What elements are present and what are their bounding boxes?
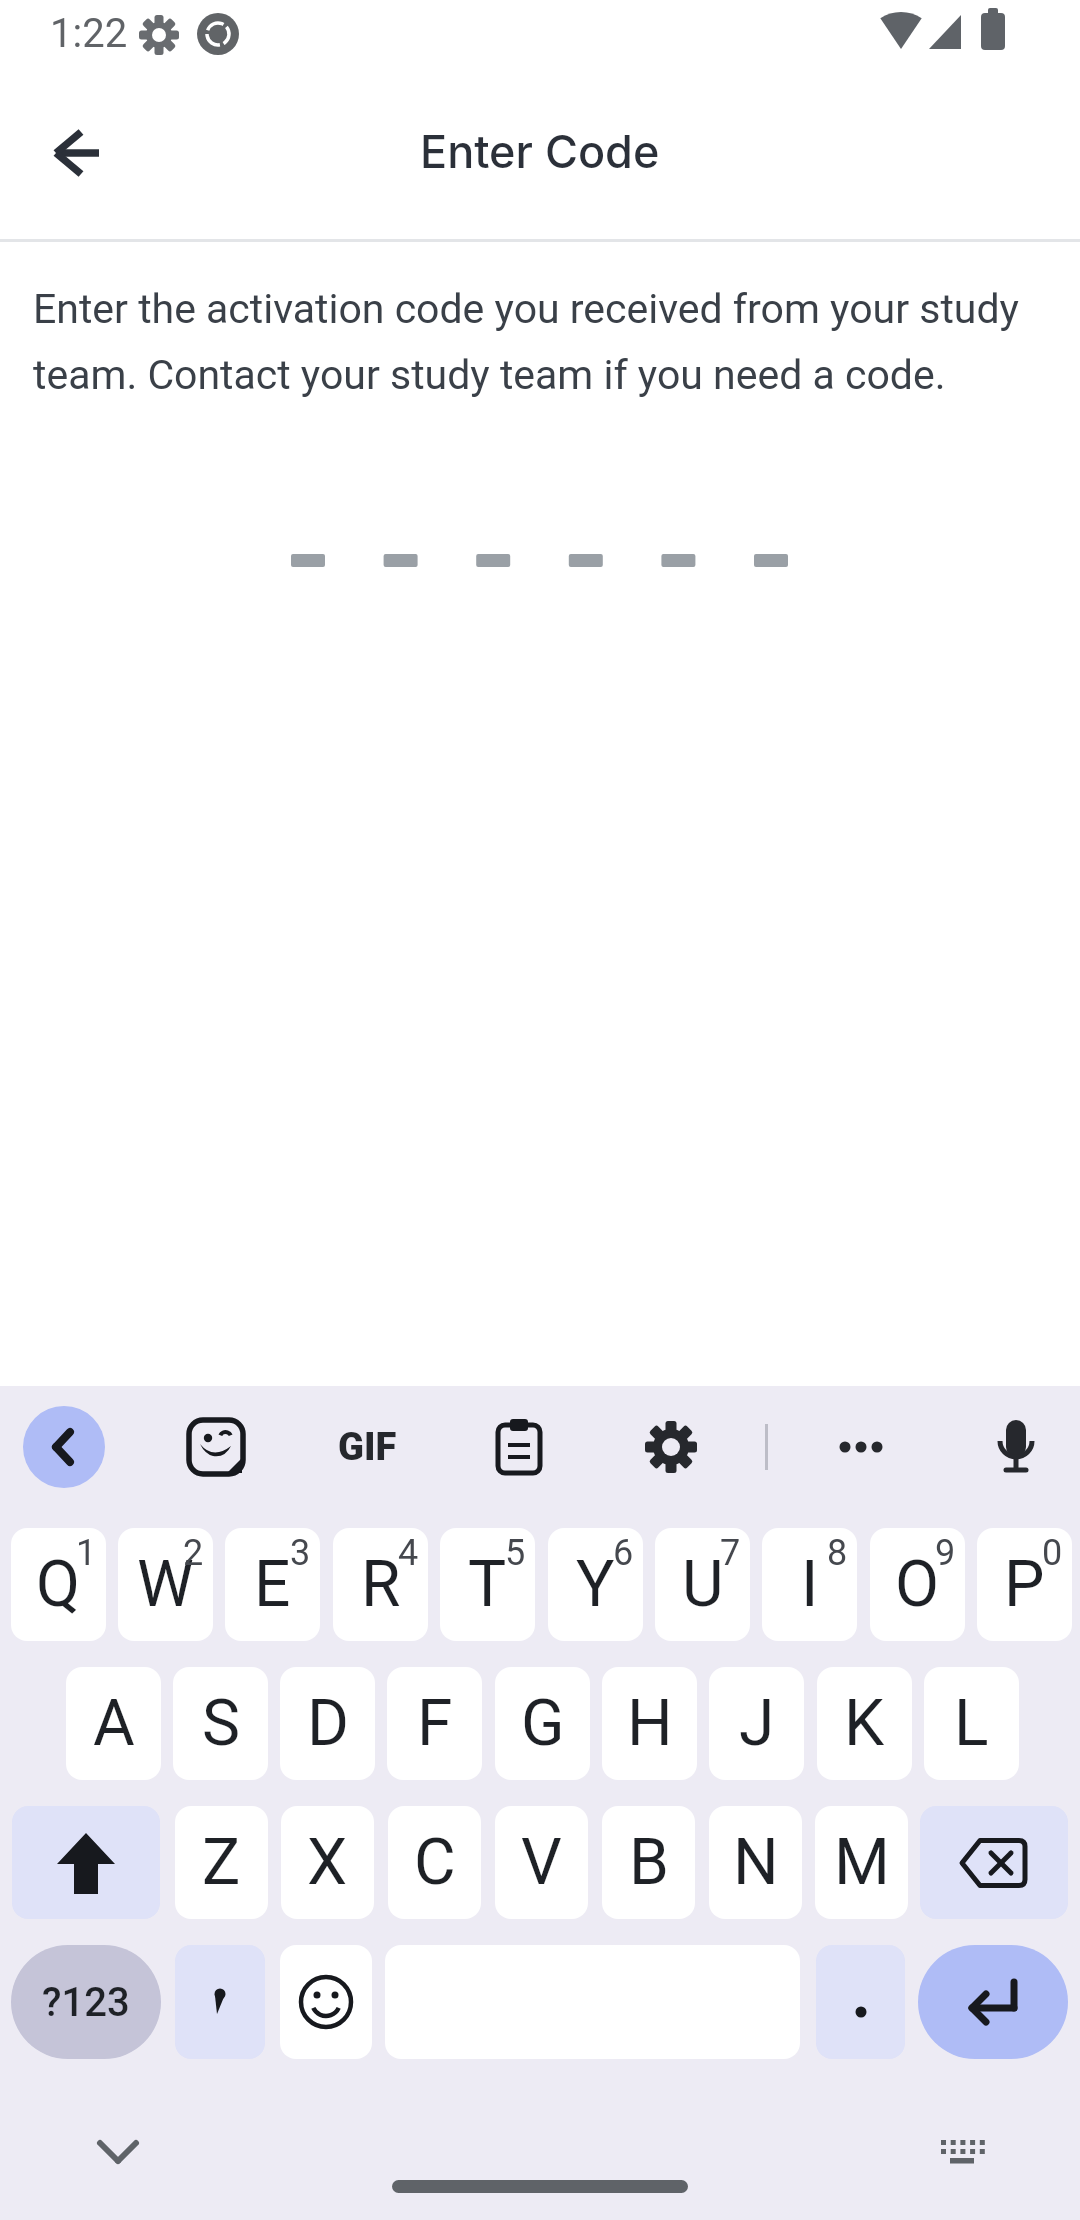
staticText: 4 xyxy=(398,1532,419,1574)
button[interactable]: L xyxy=(924,1667,1019,1780)
staticText: P xyxy=(1004,1547,1045,1622)
button[interactable] xyxy=(920,1806,1068,1919)
staticText: K xyxy=(844,1686,885,1761)
staticText: 5 xyxy=(505,1532,526,1574)
staticText: E xyxy=(254,1547,291,1622)
staticText: 8 xyxy=(827,1532,848,1574)
staticText: O xyxy=(895,1547,940,1622)
staticText: 1:22 xyxy=(50,10,128,57)
staticText: team. Contact your study team if you nee… xyxy=(33,351,946,399)
button[interactable]: ?123 xyxy=(11,1945,161,2059)
staticText: H xyxy=(627,1686,673,1761)
button[interactable]: T xyxy=(440,1528,535,1641)
button[interactable]: D xyxy=(280,1667,375,1780)
staticText: I xyxy=(801,1547,819,1622)
button[interactable] xyxy=(0,0,1080,600)
staticText: V xyxy=(521,1825,562,1900)
staticText: M xyxy=(834,1825,890,1900)
button[interactable]: I xyxy=(762,1528,857,1641)
button[interactable] xyxy=(88,2122,148,2182)
staticText: N xyxy=(733,1825,779,1900)
button[interactable] xyxy=(23,1406,105,1488)
button[interactable]: F xyxy=(387,1667,482,1780)
button[interactable]: V xyxy=(495,1806,588,1919)
button[interactable]: P xyxy=(977,1528,1072,1641)
staticText: Enter the activation code you received f… xyxy=(33,285,1019,333)
button[interactable] xyxy=(981,1412,1051,1482)
staticText: X xyxy=(307,1825,348,1900)
staticText: 3 xyxy=(290,1532,311,1574)
button[interactable] xyxy=(175,1945,265,2059)
button[interactable]: X xyxy=(281,1806,374,1919)
button[interactable]: S xyxy=(173,1667,268,1780)
button[interactable]: A xyxy=(66,1667,161,1780)
button[interactable] xyxy=(181,1412,251,1482)
button[interactable]: C xyxy=(388,1806,481,1919)
staticText: B xyxy=(629,1825,669,1900)
staticText: U xyxy=(682,1547,724,1622)
staticText: T xyxy=(468,1547,507,1622)
staticText: W xyxy=(137,1547,194,1622)
button[interactable]: M xyxy=(815,1806,908,1919)
button[interactable]: Q xyxy=(11,1528,106,1641)
button[interactable] xyxy=(826,1412,896,1482)
staticText: ?123 xyxy=(42,1979,130,2026)
staticText: G xyxy=(521,1686,565,1761)
button[interactable]: U xyxy=(655,1528,750,1641)
staticText: Enter Code xyxy=(420,124,660,178)
button[interactable]: G xyxy=(495,1667,590,1780)
staticText: Y xyxy=(576,1547,615,1622)
button[interactable] xyxy=(636,1412,706,1482)
button[interactable] xyxy=(816,1945,905,2059)
staticText: S xyxy=(202,1686,240,1761)
button[interactable]: E xyxy=(225,1528,320,1641)
button[interactable]: K xyxy=(817,1667,912,1780)
staticText: R xyxy=(361,1547,401,1622)
button[interactable] xyxy=(280,1945,372,2059)
staticText: 6 xyxy=(613,1532,634,1574)
button[interactable]: H xyxy=(602,1667,697,1780)
button[interactable]: Z xyxy=(175,1806,268,1919)
button[interactable]: J xyxy=(709,1667,804,1780)
staticText: 2 xyxy=(183,1532,204,1574)
button[interactable]: W xyxy=(118,1528,213,1641)
button[interactable]: R xyxy=(333,1528,428,1641)
button[interactable] xyxy=(918,1945,1068,2059)
button[interactable] xyxy=(392,2180,688,2193)
button[interactable]: N xyxy=(709,1806,802,1919)
staticText: J xyxy=(739,1686,775,1761)
staticText: 1 xyxy=(76,1532,97,1574)
staticText: F xyxy=(417,1686,453,1761)
staticText: D xyxy=(307,1686,349,1761)
staticText: 9 xyxy=(935,1532,956,1574)
staticText: L xyxy=(954,1686,989,1761)
button[interactable]: O xyxy=(870,1528,965,1641)
button[interactable] xyxy=(31,107,123,199)
button[interactable]: B xyxy=(602,1806,695,1919)
staticText: C xyxy=(414,1825,456,1900)
staticText: GIF xyxy=(338,1425,397,1470)
button[interactable] xyxy=(12,1806,160,1919)
staticText: A xyxy=(93,1686,135,1761)
staticText: 7 xyxy=(720,1532,741,1574)
button[interactable]: GIF xyxy=(317,1412,417,1482)
staticText: Z xyxy=(202,1825,241,1900)
button[interactable] xyxy=(932,2122,992,2182)
staticText: Q xyxy=(36,1547,81,1622)
button[interactable]: Y xyxy=(548,1528,643,1641)
button[interactable] xyxy=(484,1412,554,1482)
staticText: 0 xyxy=(1042,1532,1063,1574)
